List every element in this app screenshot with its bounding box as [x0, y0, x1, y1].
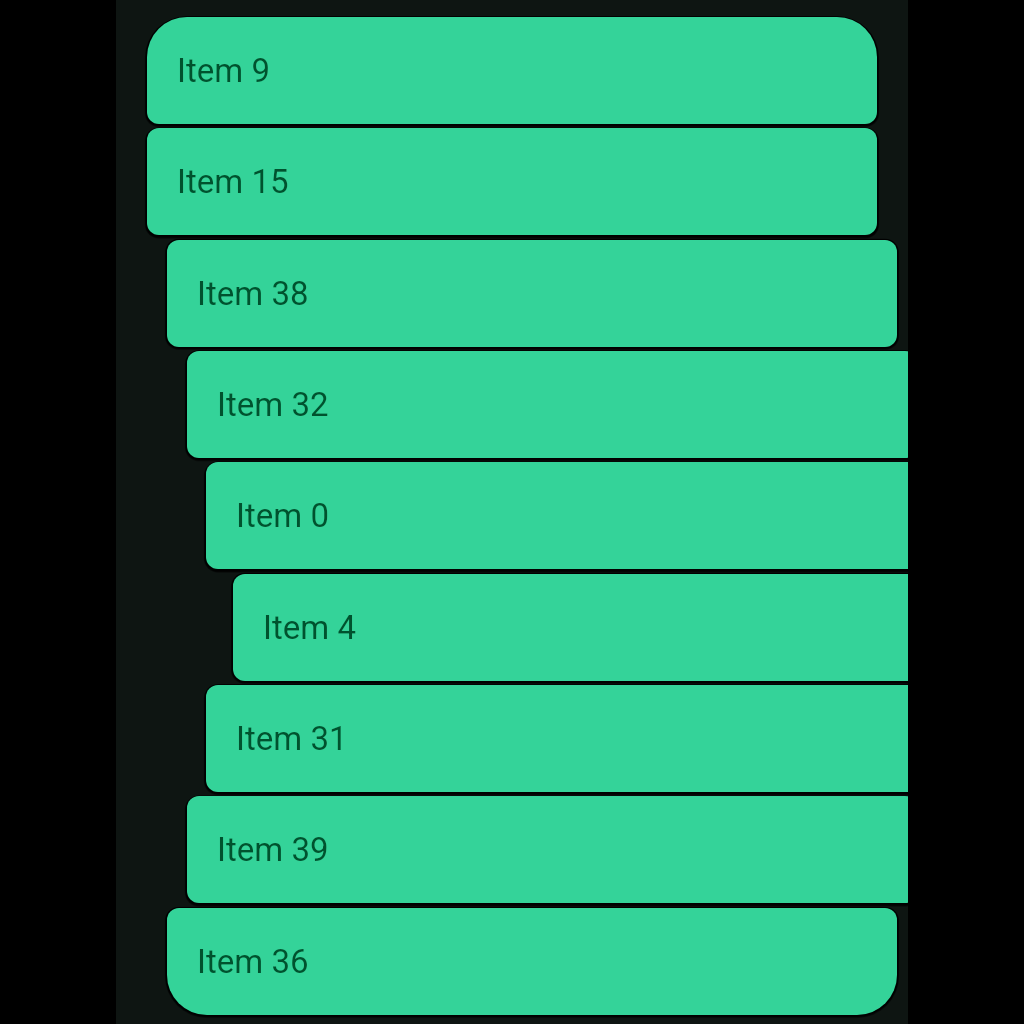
- staticText: Item 4: [263, 608, 356, 647]
- button[interactable]: Item 38: [167, 240, 897, 347]
- staticText: Item 0: [236, 496, 329, 535]
- button[interactable]: Item 0: [206, 462, 908, 569]
- button[interactable]: Item 31: [206, 685, 908, 792]
- staticText: Item 9: [177, 51, 270, 90]
- staticText: Item 38: [197, 274, 309, 313]
- button[interactable]: Item 15: [147, 128, 877, 235]
- button[interactable]: Item 39: [187, 796, 908, 903]
- other: Staggered card list: [116, 0, 908, 1024]
- button[interactable]: Item 4: [233, 574, 908, 681]
- button[interactable]: Item 32: [187, 351, 908, 458]
- staticText: Item 15: [177, 162, 289, 201]
- staticText: Item 36: [197, 942, 309, 981]
- button[interactable]: Item 9: [147, 17, 877, 124]
- button[interactable]: Item 36: [167, 908, 897, 1015]
- staticText: Item 32: [217, 385, 329, 424]
- staticText: Item 31: [236, 719, 348, 758]
- staticText: Item 39: [217, 830, 329, 869]
